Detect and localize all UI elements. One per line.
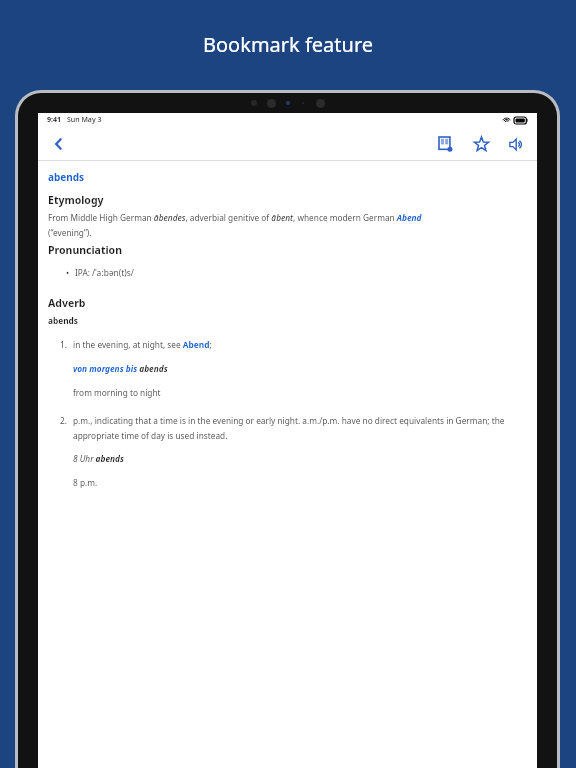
staticText: abends bbox=[48, 170, 85, 184]
staticText: Adverb bbox=[48, 296, 86, 310]
staticText: • bbox=[66, 267, 70, 278]
button[interactable]: Notes bbox=[433, 131, 459, 157]
staticText: IPA: /ˈaːbən(t)s/ bbox=[75, 267, 134, 278]
staticText: Pronunciation bbox=[48, 243, 122, 257]
staticText: From Middle High German ābendes, adverbi… bbox=[48, 212, 422, 238]
staticText: p.m., indicating that a time is in the e… bbox=[73, 415, 527, 441]
staticText: 1. bbox=[60, 339, 73, 350]
staticText: Sun May 3 bbox=[67, 115, 102, 125]
staticText: from morning to night bbox=[73, 387, 161, 398]
button[interactable]: Bookmark bbox=[468, 131, 494, 157]
staticText: in the evening, at night, see Abend; bbox=[73, 339, 212, 350]
staticText: 8 p.m. bbox=[73, 477, 98, 488]
staticText: Bookmark feature bbox=[203, 31, 374, 58]
button[interactable]: Back bbox=[46, 131, 72, 157]
staticText: von morgens bis abends bbox=[73, 363, 168, 374]
staticText: 9:41 bbox=[47, 115, 61, 125]
staticText: 8 Uhr abends bbox=[73, 453, 124, 464]
staticText: 2. bbox=[60, 415, 73, 426]
staticText: Etymology bbox=[48, 193, 104, 207]
staticText: abends bbox=[48, 315, 78, 326]
button[interactable]: Pronounce bbox=[503, 131, 529, 157]
